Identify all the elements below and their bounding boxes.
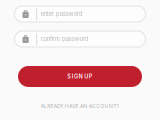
button[interactable]: SIGN UP xyxy=(14,66,145,87)
staticText: SIGN UP xyxy=(67,73,93,80)
button[interactable]: ALREADY HAVE AN ACCOUNT? xyxy=(41,103,119,109)
staticText: ALREADY HAVE AN ACCOUNT? xyxy=(41,103,119,109)
staticText: enter password xyxy=(41,10,83,17)
staticText: confirm password xyxy=(41,35,89,42)
